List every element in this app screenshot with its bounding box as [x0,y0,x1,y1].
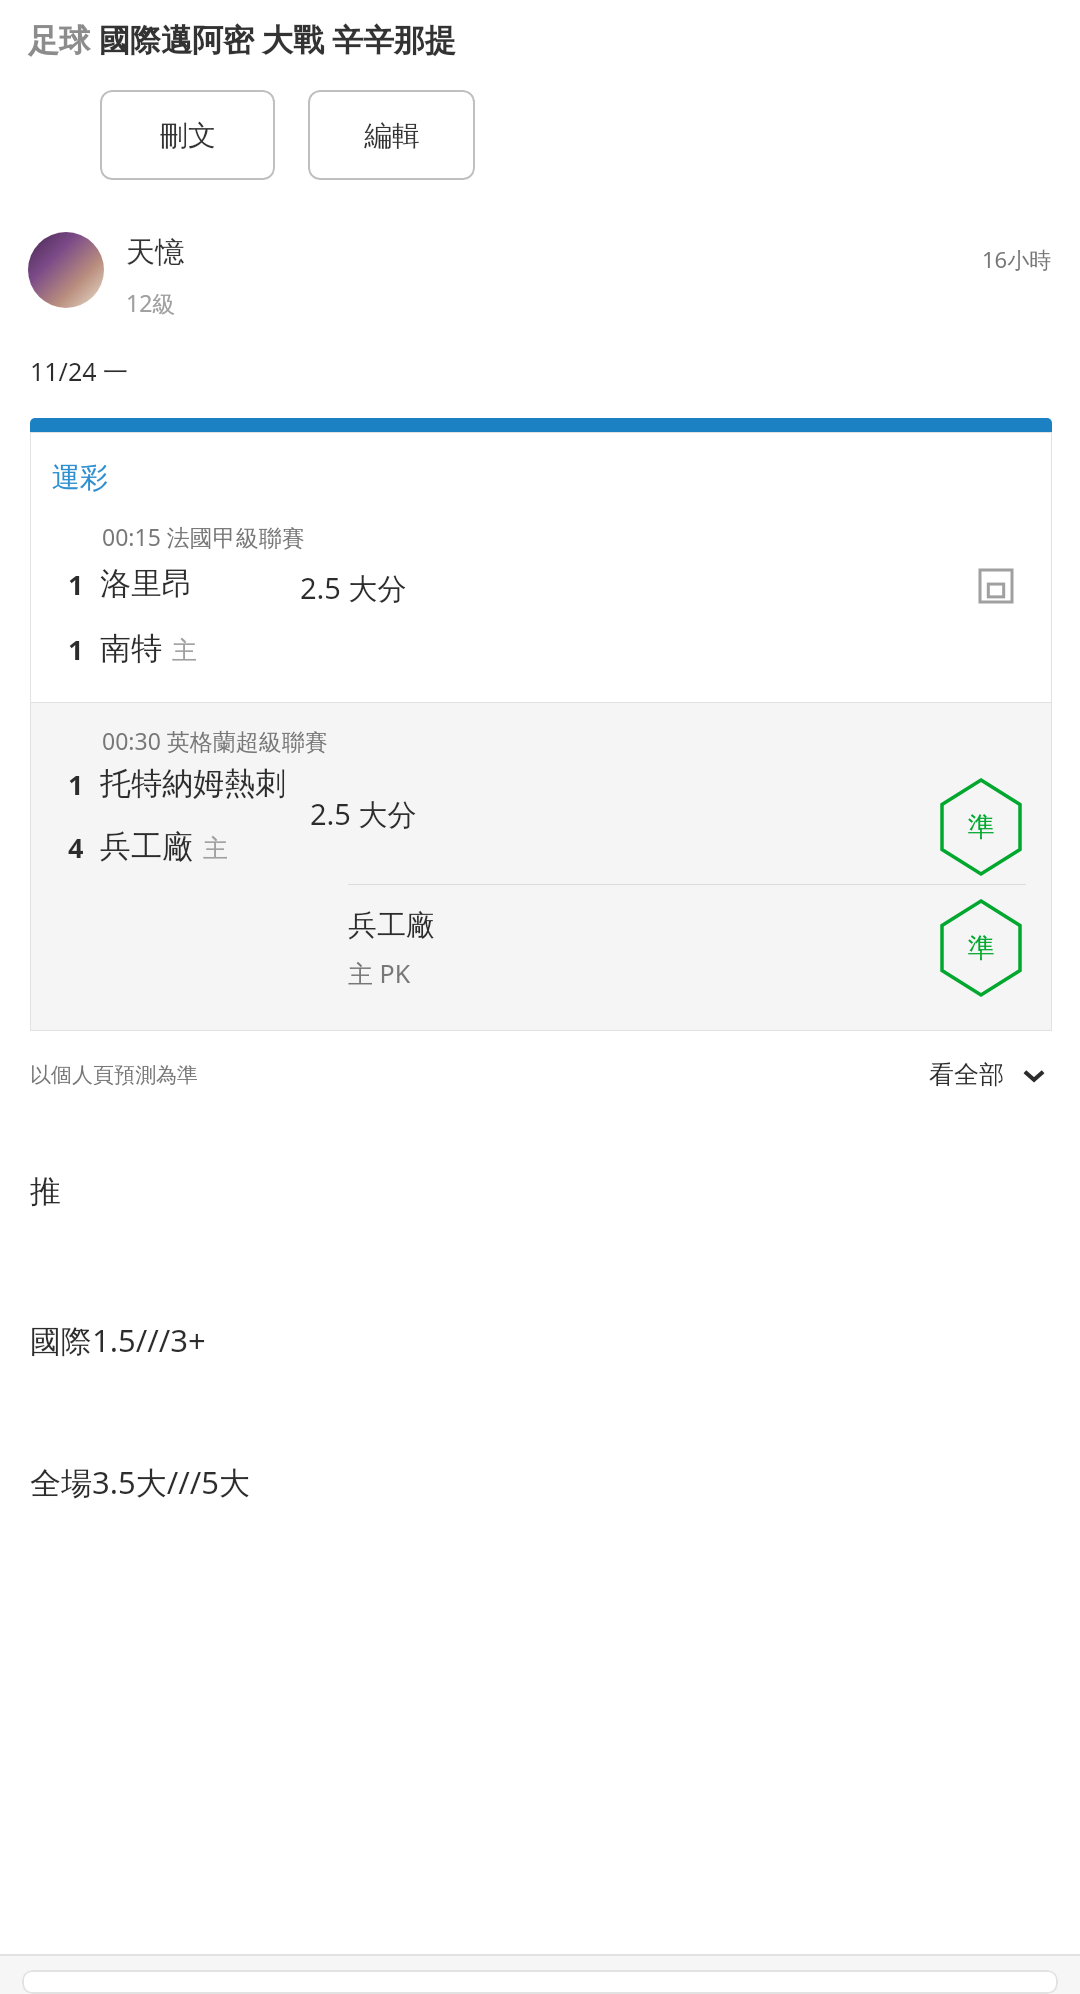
staticText: 以個人頁預測為準 [30,1062,198,1088]
button[interactable]: 00:15 法國甲級聯賽 [30,521,1052,702]
staticText: 1 [68,631,84,668]
button[interactable]: 00:30 英格蘭超級聯賽 [30,703,1052,1031]
staticText: 16小時 [982,244,1052,274]
staticText: 11/24 一 [30,354,129,388]
staticText: 足球 [28,18,99,60]
staticText: 兵工廠 [348,907,435,944]
staticText: 00:15 法國甲級聯賽 [102,521,305,552]
staticText: 看全部 [929,1059,1004,1090]
staticText: 2.5 大分 [300,568,407,608]
staticText: 主 [172,635,197,666]
button[interactable]: 看全部 [925,1053,1050,1096]
staticText: 兵工廠 [100,827,193,866]
staticText: 洛里昂 [100,564,193,603]
button[interactable]: Author avatar [28,232,104,308]
staticText: 主 [203,833,228,864]
other: Pending result [980,570,1012,602]
button[interactable]: 編輯 [308,90,475,180]
staticText: 國際1.5///3+ [30,1319,206,1361]
staticText: 4 [68,829,84,866]
staticText: 托特納姆熱刺 [100,764,286,803]
staticText: 全場3.5大///5大 [30,1461,251,1503]
staticText: 12級 [126,287,176,318]
staticText: 刪文 [160,118,216,153]
staticText: 1 [68,566,84,603]
staticText: 2.5 大分 [310,794,417,834]
staticText: 推 [30,1172,61,1211]
staticText: 國際邁阿密 大戰 辛辛那提 [99,18,457,60]
staticText: 主 PK [348,956,411,990]
staticText: 00:30 英格蘭超級聯賽 [102,725,328,756]
button[interactable]: 運彩 [52,460,108,495]
staticText: 準 [968,810,995,844]
button[interactable]: 刪文 [100,90,275,180]
staticText: 南特 [100,629,162,668]
staticText: 編輯 [364,118,420,153]
button[interactable]: Write a comment [22,1970,1058,1994]
staticText: 1 [68,766,84,803]
staticText: 準 [968,931,995,965]
button[interactable]: 天憶 [126,234,184,271]
